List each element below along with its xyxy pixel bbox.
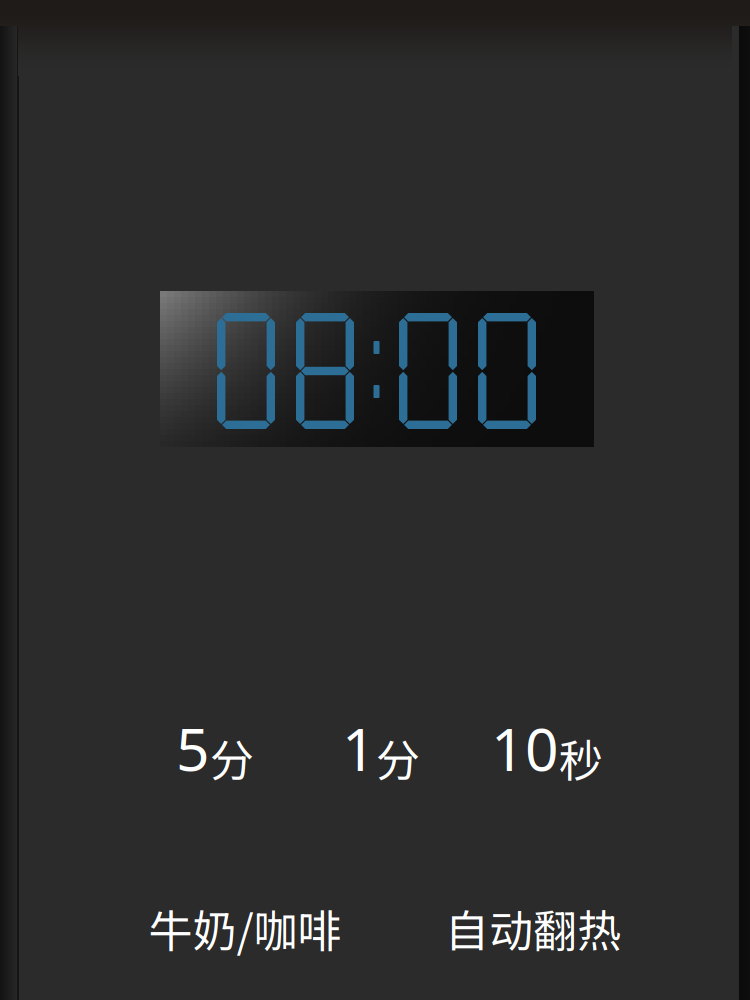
button[interactable]: 牛奶/咖啡 (101, 884, 389, 972)
button[interactable]: 10 秒 (464, 705, 630, 793)
staticText: 牛奶/咖啡 (148, 897, 341, 959)
staticText: 1分 (342, 709, 420, 789)
button[interactable]: 自动翻热 (389, 884, 677, 972)
button[interactable]: 1 分 (298, 705, 464, 793)
staticText: 自动翻热 (445, 897, 621, 959)
staticText: 10秒 (491, 709, 603, 789)
staticText: 5分 (176, 709, 254, 789)
button[interactable]: 5 分 (132, 705, 298, 793)
